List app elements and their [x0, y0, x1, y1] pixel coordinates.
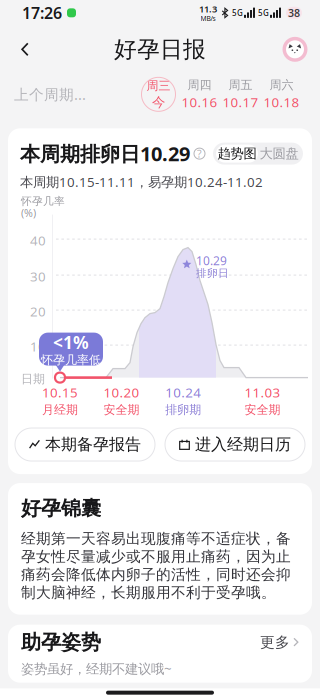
- staticText: 10.29: [196, 253, 227, 268]
- staticText: 本周期排卵日10.29: [20, 140, 190, 167]
- staticText: 周三: [146, 78, 170, 93]
- staticText: 10.16: [181, 93, 217, 111]
- staticText: 10.20: [104, 384, 140, 401]
- staticText: 日期: [21, 372, 45, 386]
- staticText: 今: [152, 94, 165, 110]
- staticText: 10.17: [222, 93, 258, 111]
- button[interactable]: 进入经期日历: [165, 428, 305, 461]
- staticText: MB/s: [200, 14, 215, 23]
- staticText: 周四: [187, 78, 211, 92]
- staticText: 好孕锦囊: [21, 496, 101, 521]
- staticText: 40: [30, 232, 46, 249]
- staticText: 20: [30, 303, 46, 320]
- staticText: 好孕日报: [114, 35, 206, 63]
- staticText: <1%: [53, 331, 89, 354]
- staticText: ?: [197, 146, 202, 161]
- button[interactable]: 周三: [138, 77, 179, 111]
- staticText: 安全期: [104, 402, 140, 417]
- button[interactable]: 周四: [179, 77, 220, 111]
- staticText: 38: [288, 6, 300, 20]
- staticText: 大圆盘: [259, 145, 298, 162]
- staticText: 姿势虽好，经期不建议哦~: [21, 660, 172, 677]
- button[interactable]: 周六: [261, 77, 302, 111]
- staticText: 助孕姿势: [21, 630, 101, 655]
- staticText: 怀孕几率: [21, 195, 65, 208]
- staticText: (%): [21, 206, 36, 220]
- button[interactable]: 本期备孕报告: [15, 428, 155, 461]
- staticText: 排卵日: [196, 266, 229, 280]
- button[interactable]: 大圆盘: [258, 145, 300, 163]
- staticText: 17:26: [22, 2, 62, 23]
- staticText: 月经期: [42, 402, 78, 417]
- staticText: 排卵期: [165, 402, 201, 417]
- staticText: 周五: [228, 78, 252, 92]
- staticText: 10: [30, 338, 46, 355]
- button[interactable]: 返回: [9, 31, 41, 67]
- staticText: 更多: [260, 633, 290, 651]
- staticText: 进入经期日历: [195, 435, 291, 454]
- staticText: 5G: [232, 7, 243, 18]
- staticText: 经期第一天容易出现腹痛等不适症状，备孕女性尽量减少或不服用止痛药，因为止痛药会降…: [21, 530, 291, 602]
- button[interactable]: 趋势图: [216, 145, 258, 163]
- staticText: 怀孕几率低: [41, 353, 101, 367]
- staticText: 周六: [269, 78, 293, 92]
- staticText: 10.15: [42, 384, 78, 401]
- staticText: 本周期10.15-11.11，易孕期10.24-11.02: [20, 173, 263, 191]
- button[interactable]: 个人中心: [279, 31, 311, 67]
- staticText: 11.03: [244, 384, 280, 401]
- staticText: 11.3: [199, 3, 217, 15]
- staticText: 5G: [258, 7, 269, 18]
- staticText: 趋势图: [217, 145, 256, 162]
- staticText: 上个周期...: [14, 85, 86, 104]
- button[interactable]: 周五: [220, 77, 261, 111]
- staticText: 安全期: [244, 402, 280, 417]
- staticText: 30: [30, 268, 46, 285]
- staticText: 本期备孕报告: [45, 435, 141, 454]
- staticText: 10.24: [165, 384, 201, 401]
- button[interactable]: 助孕姿势: [8, 625, 312, 683]
- staticText: 10.18: [263, 93, 299, 111]
